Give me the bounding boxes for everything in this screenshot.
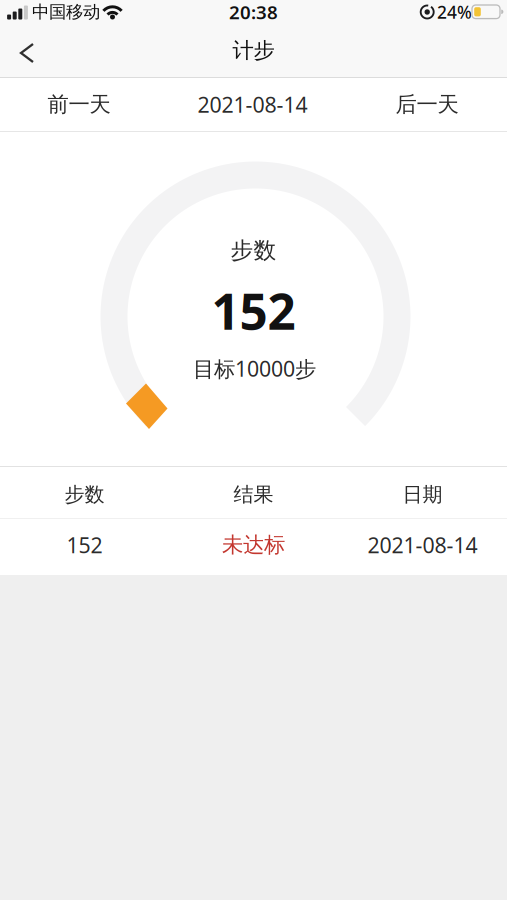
staticText: 24% bbox=[437, 0, 472, 23]
button[interactable]: 前一天 bbox=[0, 78, 158, 131]
staticText: 未达标 bbox=[222, 532, 285, 558]
staticText: 步数 bbox=[230, 237, 276, 264]
staticText: 日期 bbox=[402, 482, 442, 507]
staticText: 中国移动 bbox=[32, 1, 100, 23]
staticText: 前一天 bbox=[47, 91, 110, 118]
staticText: 计步 bbox=[232, 37, 274, 64]
staticText: 步数 bbox=[64, 482, 104, 507]
staticText: 后一天 bbox=[395, 91, 458, 118]
staticText: 152 bbox=[66, 531, 102, 559]
staticText: 目标10000步 bbox=[193, 354, 316, 383]
button[interactable]: Back bbox=[0, 24, 35, 76]
staticText: 152 bbox=[211, 278, 295, 343]
staticText: 2021-08-14 bbox=[197, 90, 307, 119]
staticText: 结果 bbox=[233, 482, 273, 507]
staticText: 20:38 bbox=[229, 0, 278, 24]
button[interactable]: 后一天 bbox=[347, 78, 507, 131]
staticText: 2021-08-14 bbox=[367, 531, 477, 559]
